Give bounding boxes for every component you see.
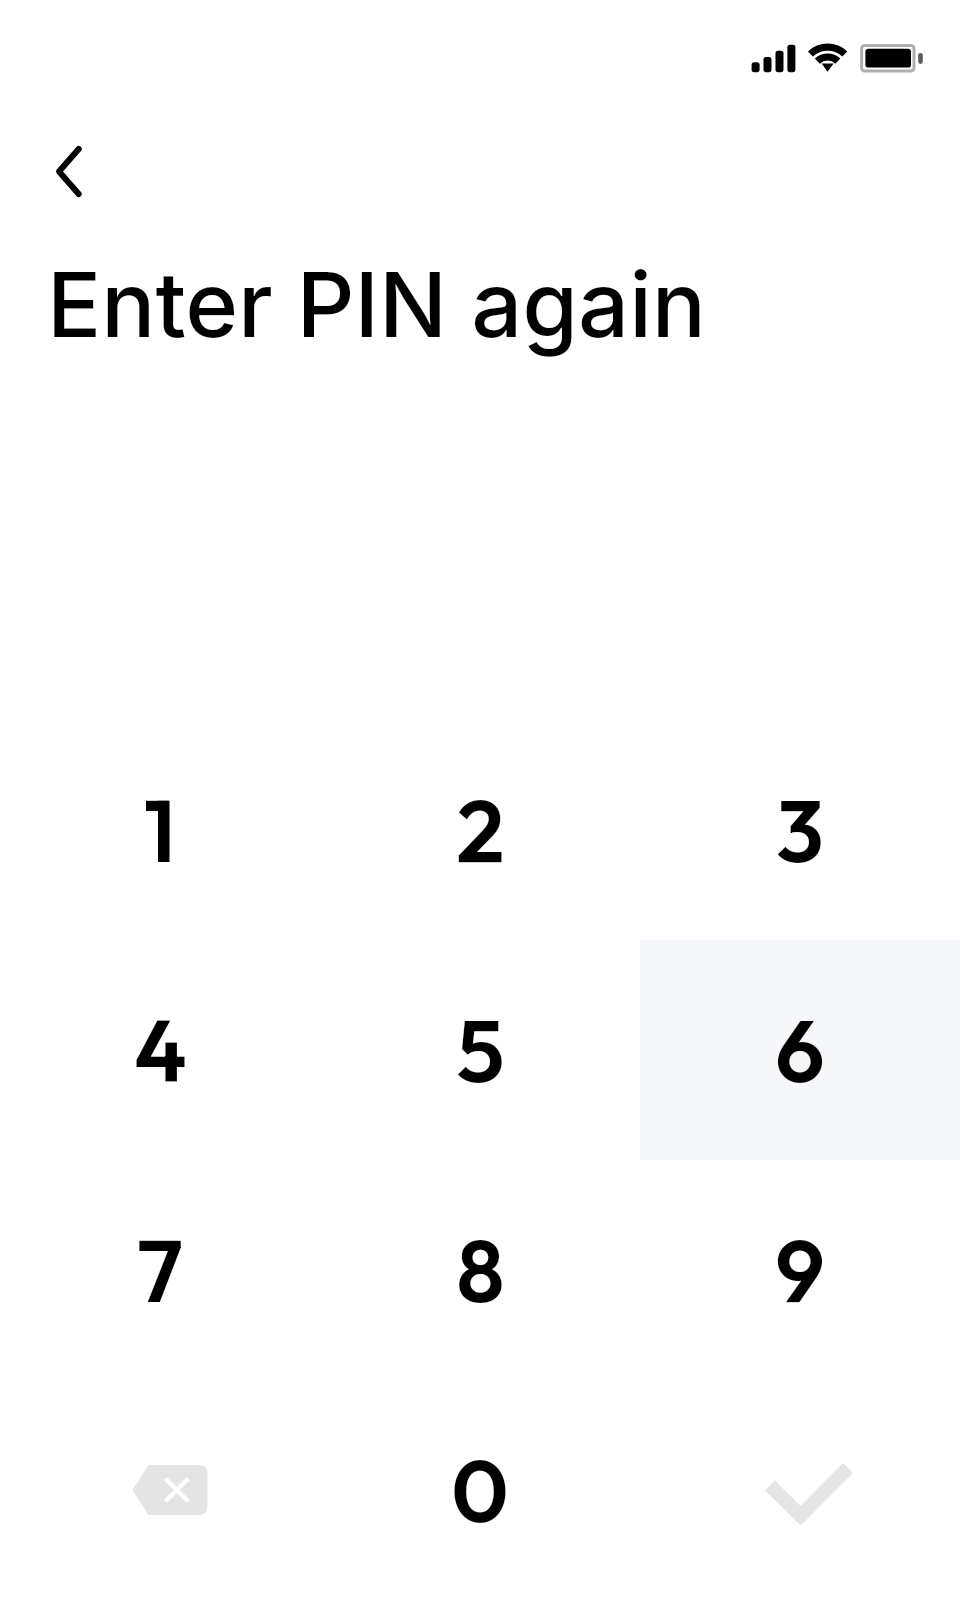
button[interactable]: 5 xyxy=(320,940,640,1160)
staticText: 4 xyxy=(134,995,187,1105)
button[interactable]: 6 xyxy=(640,940,960,1160)
button[interactable]: 9 xyxy=(640,1160,960,1380)
button[interactable]: Delete xyxy=(0,1380,320,1600)
button[interactable]: 4 xyxy=(0,940,320,1160)
button[interactable]: 1 xyxy=(0,720,320,940)
staticText: Enter PIN again xyxy=(47,250,706,359)
button[interactable]: 8 xyxy=(320,1160,640,1380)
staticText: 5 xyxy=(456,995,505,1105)
staticText: 2 xyxy=(456,775,505,885)
button[interactable]: 2 xyxy=(320,720,640,940)
staticText: 0 xyxy=(451,1435,509,1545)
button[interactable]: 0 xyxy=(320,1380,640,1600)
staticText: 7 xyxy=(137,1215,183,1325)
staticText: 1 xyxy=(144,775,176,885)
button[interactable]: Confirm xyxy=(640,1380,960,1600)
staticText: 9 xyxy=(775,1215,825,1325)
button[interactable]: 3 xyxy=(640,720,960,940)
staticText: 3 xyxy=(776,775,824,885)
staticText: 6 xyxy=(775,995,825,1105)
button[interactable]: 7 xyxy=(0,1160,320,1380)
button[interactable]: Back xyxy=(16,120,96,224)
staticText: 8 xyxy=(456,1215,505,1325)
